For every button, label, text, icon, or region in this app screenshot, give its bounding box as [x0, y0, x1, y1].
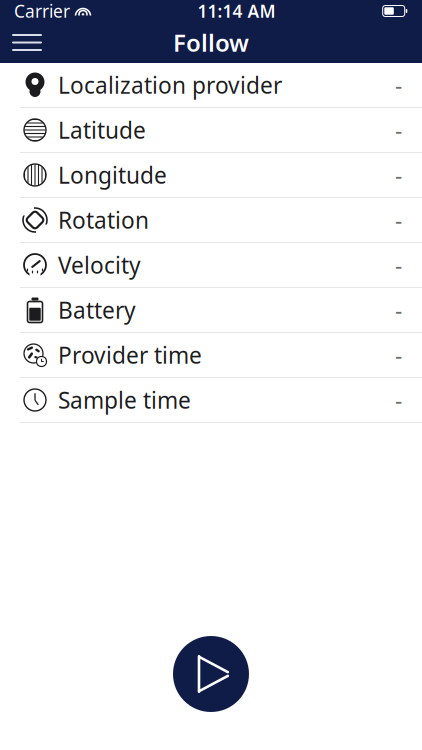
- button[interactable]: Latitude: [0, 108, 422, 153]
- button[interactable]: Sample time: [0, 378, 422, 423]
- staticText: Carrier: [14, 0, 70, 22]
- staticText: -: [395, 295, 402, 325]
- staticText: Longitude: [58, 160, 167, 190]
- staticText: Localization provider: [58, 70, 282, 100]
- staticText: Latitude: [58, 115, 146, 145]
- staticText: -: [395, 160, 402, 190]
- staticText: Provider time: [58, 340, 202, 370]
- staticText: -: [395, 115, 402, 145]
- button[interactable]: Rotation: [0, 198, 422, 243]
- staticText: -: [395, 250, 402, 280]
- button[interactable]: Provider time: [0, 333, 422, 378]
- staticText: -: [395, 385, 402, 415]
- button[interactable]: Battery: [0, 288, 422, 333]
- staticText: -: [395, 205, 402, 235]
- button[interactable]: Start following: [173, 636, 249, 712]
- button[interactable]: Localization provider: [0, 63, 422, 108]
- staticText: Velocity: [58, 250, 141, 280]
- staticText: Sample time: [58, 385, 191, 415]
- button[interactable]: Velocity: [0, 243, 422, 288]
- button[interactable]: Menu: [0, 22, 54, 63]
- staticText: Battery: [58, 295, 136, 325]
- staticText: Follow: [173, 27, 249, 58]
- button[interactable]: Longitude: [0, 153, 422, 198]
- staticText: -: [395, 70, 402, 100]
- staticText: Rotation: [58, 205, 149, 235]
- staticText: 11:14 AM: [197, 0, 275, 22]
- staticText: -: [395, 340, 402, 370]
